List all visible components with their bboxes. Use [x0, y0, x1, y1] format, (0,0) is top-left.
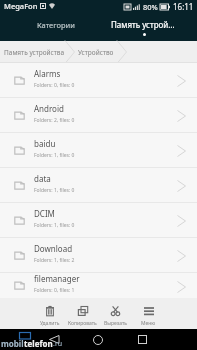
- button[interactable]: Категории: [12, 14, 99, 41]
- button[interactable]: Download: [0, 238, 197, 272]
- staticText: Android: [34, 103, 64, 114]
- button[interactable]: Home: [76, 329, 120, 350]
- staticText: Folders: 1, files: 0: [34, 222, 75, 229]
- staticText: Вырезать: [104, 320, 128, 327]
- staticText: 16:11: [173, 1, 194, 12]
- button[interactable]: Память устрой…: [99, 14, 186, 41]
- staticText: Устройство: [78, 48, 114, 57]
- staticText: filemanager: [34, 273, 80, 284]
- button[interactable]: Вырезать: [99, 298, 132, 329]
- staticText: Folders: 0, files: 1: [34, 287, 75, 294]
- staticText: .ru: [53, 339, 63, 349]
- button[interactable]: baidu: [0, 133, 197, 167]
- staticText: Удалить: [40, 320, 60, 327]
- staticText: Folders: 0, files: 0: [34, 82, 75, 89]
- button[interactable]: Устройство: [75, 41, 117, 63]
- staticText: 80%: [143, 2, 158, 12]
- staticText: Folders: 1, files: 0: [34, 187, 75, 194]
- staticText: telefon: [24, 338, 53, 349]
- button[interactable]: filemanager: [0, 273, 197, 298]
- staticText: Download: [34, 243, 73, 254]
- button[interactable]: Меню: [132, 298, 165, 329]
- staticText: Folders: 1, files: 2: [34, 257, 75, 264]
- button[interactable]: Копировать: [66, 298, 99, 329]
- button[interactable]: Recents: [120, 329, 164, 350]
- staticText: baidu: [34, 138, 56, 149]
- button[interactable]: Память устройства: [0, 41, 65, 63]
- button[interactable]: Alarms: [0, 63, 197, 97]
- staticText: Память устройства: [4, 48, 65, 57]
- staticText: Категории: [37, 20, 75, 30]
- staticText: MegaFon: [4, 1, 38, 11]
- button[interactable]: Android: [0, 98, 197, 132]
- button[interactable]: Back: [32, 329, 76, 350]
- staticText: DCIM: [34, 208, 55, 219]
- staticText: Копировать: [68, 320, 97, 327]
- button[interactable]: Удалить: [33, 298, 66, 329]
- staticText: Folders: 1, files: 0: [34, 152, 75, 159]
- staticText: Alarms: [34, 68, 61, 79]
- staticText: Folders: 2, files: 0: [34, 117, 75, 124]
- staticText: Меню: [141, 320, 156, 327]
- button[interactable]: DCIM: [0, 203, 197, 237]
- staticText: mobil: [1, 338, 24, 349]
- staticText: Память устрой…: [111, 19, 175, 30]
- staticText: data: [34, 173, 51, 184]
- button[interactable]: data: [0, 168, 197, 202]
